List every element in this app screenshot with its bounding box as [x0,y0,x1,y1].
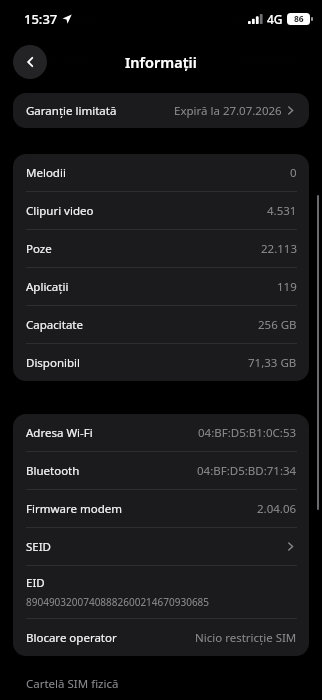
staticText: Disponibil [26,355,80,371]
button[interactable]: Clipuri video [13,192,309,229]
staticText: 119 [277,279,297,295]
button[interactable]: Poze [13,230,309,267]
staticText: Clipuri video [26,203,94,219]
staticText: Blocare operator [26,630,117,646]
button[interactable]: Melodii [13,154,309,191]
button[interactable]: Garanție limitată [13,93,309,128]
button[interactable]: Adresa Wi-Fi [13,414,309,451]
button[interactable]: Aplicații [13,268,309,305]
staticText: 89049032007408882600214670930685 [26,595,210,609]
staticText: Garanție limitată [26,103,117,119]
staticText: 04:BF:D5:BD:71:34 [197,463,297,479]
button[interactable]: Capacitate [13,306,309,343]
button[interactable]: Bluetooth [13,452,309,489]
staticText: 15:37 [24,10,58,28]
staticText: Nume model [26,14,97,30]
button[interactable]: Disponibil [13,344,309,381]
staticText: MYWV3ZD/A [229,14,297,30]
staticText: Melodii [26,165,66,181]
button[interactable]: Firmware modem [13,490,309,527]
staticText: Cartelă SIM fizică [26,676,119,692]
staticText: 4.531 [267,203,297,219]
staticText: 2.04.06 [257,501,297,517]
staticText: Firmware modem [26,501,122,517]
staticText: Nicio restricție SIM [195,630,297,646]
button[interactable]: EID [13,566,309,618]
staticText: Nume serial [26,54,92,70]
staticText: 256 GB [258,317,297,333]
staticText: Informații [125,52,197,72]
staticText: Poze [26,241,52,257]
staticText: Adresa Wi-Fi [26,425,93,441]
button[interactable]: Blocare operator [13,619,309,656]
staticText: 71,33 GB [248,355,297,371]
staticText: Expiră la 27.07.2026 [174,103,282,119]
staticText: Bluetooth [26,463,80,479]
staticText: Aplicații [26,279,69,295]
staticText: 0 [290,165,297,181]
staticText: EID [26,575,45,591]
button[interactable]: Back [13,45,47,79]
staticText: 4G [267,11,283,27]
staticText: 86 [294,13,304,25]
staticText: SEID [26,539,52,555]
staticText: 04:BF:D5:B1:0C:53 [198,425,297,441]
button[interactable]: SEID [13,528,309,565]
staticText: 22.113 [261,241,297,257]
staticText: Capacitate [26,317,83,333]
